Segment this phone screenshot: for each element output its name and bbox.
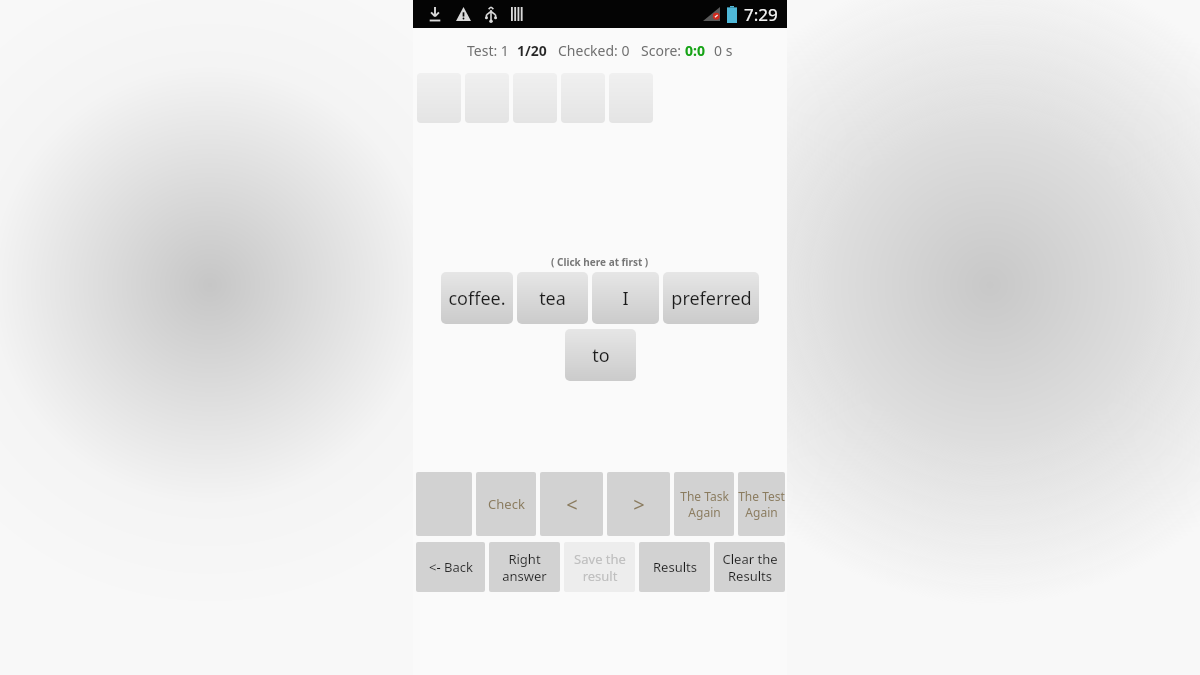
button[interactable] [561, 73, 605, 123]
button[interactable]: preferred [663, 272, 759, 324]
staticText: 7:29 [744, 3, 778, 26]
staticText: < [566, 491, 578, 518]
staticText: 0:0 [685, 41, 705, 60]
staticText: Checked: 0 [558, 41, 630, 60]
staticText: coffee. [448, 286, 506, 311]
staticText: Clear the Results [722, 550, 778, 585]
button[interactable]: Clear the Results [714, 542, 785, 592]
staticText: 1/20 [517, 41, 547, 60]
staticText: Test: 1 [467, 41, 509, 60]
staticText: ( Click here at first ) [551, 255, 649, 269]
button[interactable]: Previous [540, 472, 603, 536]
button[interactable]: The Task Again [674, 472, 734, 536]
button[interactable]: Results [639, 542, 710, 592]
button[interactable]: coffee. [441, 272, 513, 324]
button[interactable]: Right answer [489, 542, 560, 592]
button[interactable]: I [592, 272, 659, 324]
button[interactable]: <- Back [416, 542, 485, 592]
staticText: 0 s [714, 41, 733, 60]
staticText: I [622, 286, 629, 311]
staticText: The Task Again [680, 488, 729, 520]
button[interactable]: to [565, 329, 636, 381]
button[interactable] [465, 73, 509, 123]
staticText: preferred [671, 286, 752, 311]
staticText: Right answer [502, 550, 547, 585]
button[interactable]: Save the result [564, 542, 635, 592]
staticText: tea [539, 286, 566, 311]
button[interactable]: The Test Again [738, 472, 785, 536]
staticText: The Test Again [738, 488, 785, 520]
staticText: > [633, 491, 645, 518]
button[interactable]: Next [607, 472, 670, 536]
button[interactable]: Check [476, 472, 536, 536]
button[interactable] [609, 73, 653, 123]
staticText: Score: [641, 41, 685, 60]
button[interactable]: tea [517, 272, 588, 324]
staticText: Save the result [574, 550, 626, 585]
button[interactable] [513, 73, 557, 123]
button[interactable] [417, 73, 461, 123]
staticText: <- Back [429, 558, 473, 576]
staticText: Results [653, 558, 697, 576]
staticText: to [592, 343, 610, 368]
staticText: Check [488, 495, 525, 513]
